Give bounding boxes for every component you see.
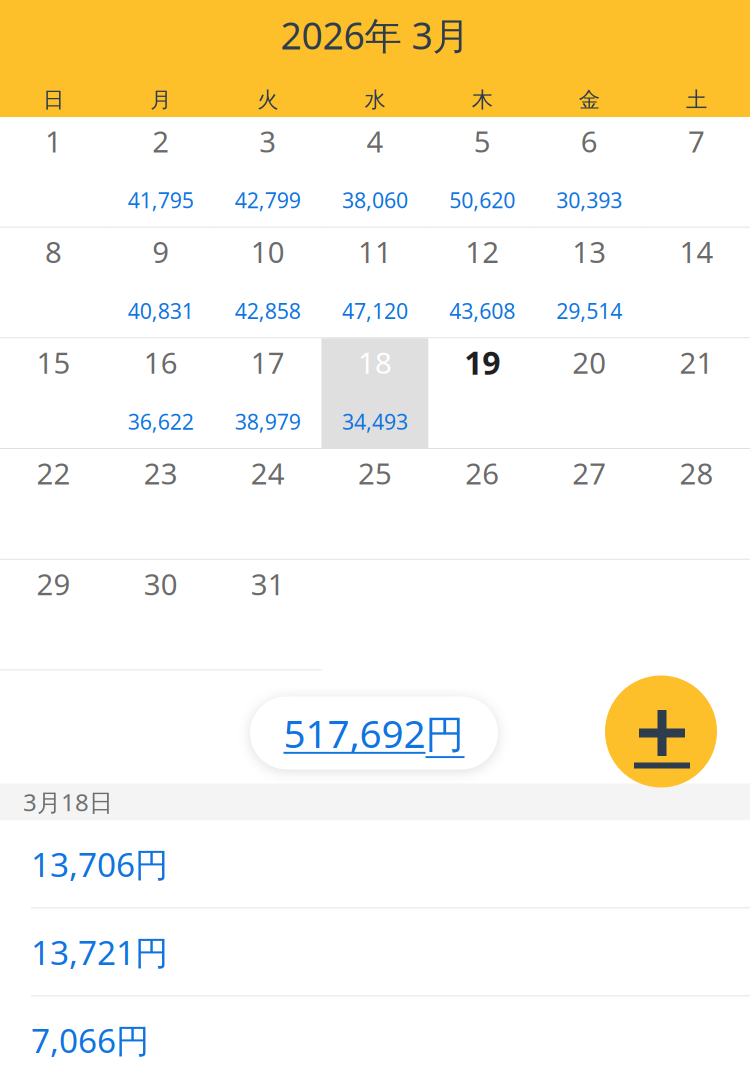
staticText: 火 bbox=[257, 87, 278, 113]
button[interactable]: 16 bbox=[107, 338, 214, 448]
staticText: 5 bbox=[474, 121, 491, 160]
button[interactable]: 19 bbox=[429, 338, 536, 448]
staticText: 12 bbox=[465, 232, 499, 271]
button[interactable]: 10 bbox=[214, 228, 321, 337]
button[interactable]: 15 bbox=[0, 338, 107, 448]
staticText: 20 bbox=[572, 343, 606, 382]
button[interactable]: 7,066円 bbox=[0, 996, 750, 1067]
staticText: 10 bbox=[251, 232, 285, 271]
staticText: 43,608 bbox=[449, 296, 515, 325]
staticText: 3月18日 bbox=[23, 786, 113, 818]
staticText: 1 bbox=[45, 121, 62, 160]
button[interactable]: 17 bbox=[214, 338, 321, 448]
staticText: 木 bbox=[472, 87, 493, 113]
button[interactable]: 8 bbox=[0, 228, 107, 337]
staticText: 9 bbox=[152, 232, 169, 271]
button[interactable]: 9 bbox=[107, 228, 214, 337]
staticText: 517,692円 bbox=[283, 707, 464, 759]
staticText: 4 bbox=[366, 121, 383, 160]
staticText: 47,120 bbox=[342, 296, 408, 325]
button[interactable]: 27 bbox=[536, 449, 643, 559]
staticText: 2 bbox=[152, 121, 169, 160]
button[interactable]: 517,692円 bbox=[250, 696, 498, 769]
button[interactable]: 13,706円 bbox=[0, 820, 750, 908]
staticText: 日 bbox=[43, 87, 64, 113]
button[interactable]: 24 bbox=[214, 449, 321, 559]
button[interactable]: 31 bbox=[214, 560, 321, 669]
staticText: 36,622 bbox=[128, 407, 194, 435]
button[interactable]: 29 bbox=[0, 560, 107, 669]
staticText: 23 bbox=[144, 454, 178, 493]
staticText: 27 bbox=[572, 454, 606, 493]
button[interactable]: 28 bbox=[643, 449, 750, 559]
staticText: 7,066円 bbox=[31, 1018, 149, 1062]
staticText: 2026年 3月 bbox=[280, 10, 469, 60]
button[interactable]: 11 bbox=[321, 228, 428, 337]
button[interactable]: 12 bbox=[429, 228, 536, 337]
button[interactable]: 23 bbox=[107, 449, 214, 559]
staticText: 7 bbox=[688, 121, 705, 160]
staticText: 50,620 bbox=[449, 186, 515, 214]
staticText: 18 bbox=[358, 343, 392, 382]
button[interactable]: 22 bbox=[0, 449, 107, 559]
button[interactable]: Add entry bbox=[605, 675, 717, 787]
staticText: 水 bbox=[364, 87, 385, 113]
staticText: 29 bbox=[37, 564, 71, 603]
staticText: 16 bbox=[144, 343, 178, 382]
staticText: 金 bbox=[579, 87, 600, 113]
button[interactable]: 5 bbox=[429, 117, 536, 227]
button[interactable]: 18 bbox=[321, 338, 428, 448]
staticText: 38,060 bbox=[342, 186, 408, 214]
button[interactable]: 13,721円 bbox=[0, 908, 750, 996]
button[interactable]: 4 bbox=[321, 117, 428, 227]
staticText: 11 bbox=[358, 232, 392, 271]
staticText: 30,393 bbox=[556, 186, 622, 214]
staticText: 6 bbox=[581, 121, 598, 160]
staticText: 26 bbox=[465, 454, 499, 493]
button[interactable]: 26 bbox=[429, 449, 536, 559]
staticText: 14 bbox=[679, 232, 713, 271]
staticText: 17 bbox=[251, 343, 285, 382]
staticText: 34,493 bbox=[342, 407, 408, 435]
staticText: 31 bbox=[251, 564, 285, 603]
button[interactable]: 13 bbox=[536, 228, 643, 337]
staticText: 42,799 bbox=[235, 186, 301, 214]
staticText: 3 bbox=[259, 121, 276, 160]
staticText: 13,721円 bbox=[31, 930, 168, 974]
button[interactable]: 20 bbox=[536, 338, 643, 448]
staticText: 8 bbox=[45, 232, 62, 271]
staticText: 42,858 bbox=[235, 296, 301, 325]
staticText: 月 bbox=[150, 87, 171, 113]
button[interactable]: 6 bbox=[536, 117, 643, 227]
button[interactable]: 30 bbox=[107, 560, 214, 669]
button[interactable]: 25 bbox=[321, 449, 428, 559]
staticText: 13,706円 bbox=[31, 842, 168, 886]
staticText: 40,831 bbox=[128, 296, 194, 325]
staticText: 19 bbox=[464, 341, 500, 384]
staticText: 41,795 bbox=[128, 186, 194, 214]
staticText: 22 bbox=[37, 454, 71, 493]
button[interactable]: 3 bbox=[214, 117, 321, 227]
button[interactable]: 2 bbox=[107, 117, 214, 227]
staticText: 30 bbox=[144, 564, 178, 603]
button[interactable]: 1 bbox=[0, 117, 107, 227]
button[interactable]: 21 bbox=[643, 338, 750, 448]
button[interactable]: 14 bbox=[643, 228, 750, 337]
staticText: 13 bbox=[572, 232, 606, 271]
staticText: 29,514 bbox=[556, 296, 622, 325]
staticText: 15 bbox=[37, 343, 71, 382]
staticText: 38,979 bbox=[235, 407, 301, 435]
staticText: 土 bbox=[686, 87, 707, 113]
staticText: 21 bbox=[679, 343, 713, 382]
staticText: 28 bbox=[679, 454, 713, 493]
staticText: 25 bbox=[358, 454, 392, 493]
button[interactable]: 7 bbox=[643, 117, 750, 227]
staticText: 24 bbox=[251, 454, 285, 493]
